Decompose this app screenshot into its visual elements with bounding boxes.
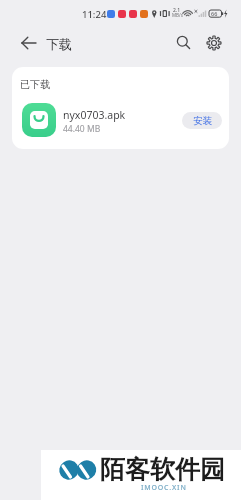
button[interactable]: Back xyxy=(15,29,43,57)
button[interactable]: Settings xyxy=(200,29,228,57)
staticText: 44.40 MB xyxy=(63,123,101,135)
staticText: nyx0703.apk xyxy=(63,108,126,122)
staticText: 下载 xyxy=(46,36,72,52)
staticText: 安装 xyxy=(193,115,212,127)
button[interactable]: 安装 xyxy=(182,112,222,129)
button[interactable]: Search xyxy=(170,29,198,57)
staticText: 66 xyxy=(211,10,218,17)
staticText: 已下载 xyxy=(20,78,50,91)
staticText: 2.1 xyxy=(173,7,181,14)
staticText: 11:24 xyxy=(82,8,107,21)
staticText: IMOOC.XIN xyxy=(141,483,187,493)
staticText: 陌客软件园 xyxy=(100,454,225,485)
staticText: MB/s xyxy=(172,12,183,18)
